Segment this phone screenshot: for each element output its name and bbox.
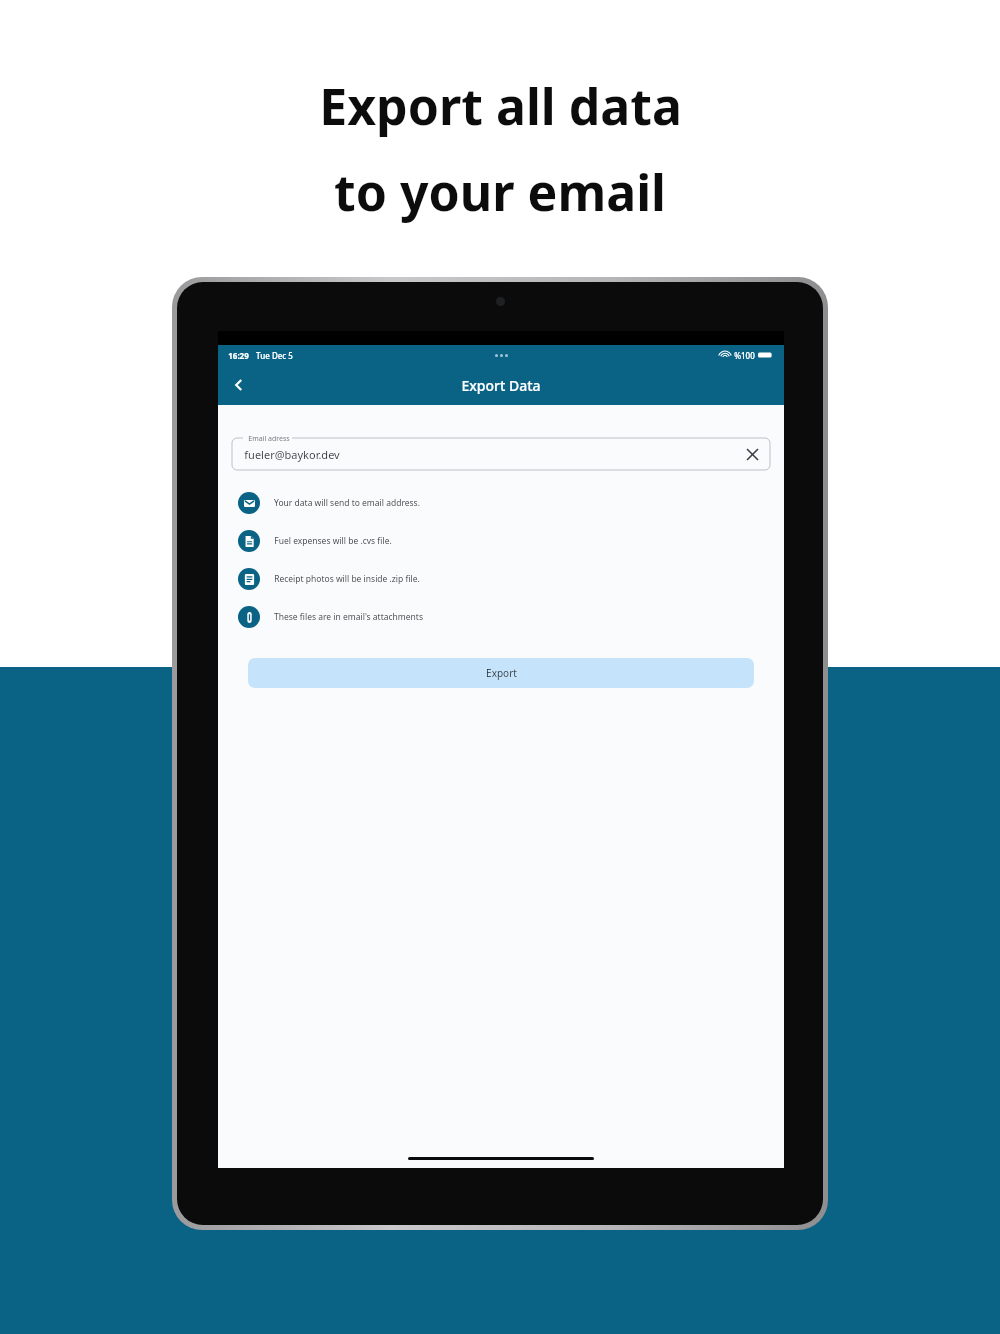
button[interactable]: Fuel expenses will be .cvs file. bbox=[238, 530, 764, 552]
staticText: Tue Dec 5 bbox=[256, 350, 293, 361]
staticText: Export bbox=[486, 666, 517, 680]
staticText: Email adress bbox=[248, 434, 290, 444]
staticText: Your data will send to email address. bbox=[274, 497, 420, 509]
staticText: Export Data bbox=[461, 376, 541, 395]
staticText: fueler@baykor.dev bbox=[244, 447, 340, 462]
staticText: to your email bbox=[334, 158, 666, 226]
button[interactable]: Receipt photos will be inside .zip file. bbox=[238, 568, 764, 590]
button[interactable]: These files are in email's attachments bbox=[238, 606, 764, 628]
staticText: %100 bbox=[734, 350, 755, 361]
button[interactable]: Back bbox=[224, 370, 254, 400]
staticText: Receipt photos will be inside .zip file. bbox=[274, 573, 420, 585]
button[interactable]: fueler@baykor.dev bbox=[232, 438, 770, 470]
staticText: Fuel expenses will be .cvs file. bbox=[274, 535, 392, 547]
button[interactable]: Clear bbox=[742, 444, 762, 464]
staticText: These files are in email's attachments bbox=[274, 611, 423, 623]
staticText: Export all data bbox=[319, 72, 682, 140]
button[interactable]: Your data will send to email address. bbox=[238, 492, 764, 514]
staticText: 16:29 bbox=[228, 350, 249, 361]
button[interactable]: Export bbox=[248, 658, 754, 688]
